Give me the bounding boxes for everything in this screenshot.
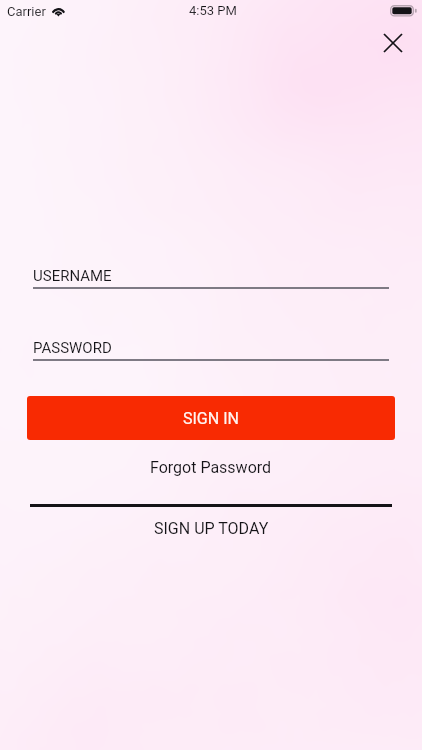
button[interactable]: Close bbox=[371, 21, 415, 65]
staticText: PASSWORD bbox=[33, 339, 112, 357]
staticText: Forgot Password bbox=[150, 458, 272, 477]
button[interactable]: SIGN UP TODAY bbox=[144, 516, 279, 541]
staticText: SIGN UP TODAY bbox=[154, 519, 269, 538]
staticText: Carrier bbox=[7, 4, 46, 19]
button[interactable]: SIGN IN bbox=[27, 396, 395, 440]
staticText: SIGN IN bbox=[183, 409, 239, 428]
button[interactable]: Forgot Password bbox=[140, 455, 282, 480]
staticText: USERNAME bbox=[33, 267, 112, 285]
staticText: 4:53 PM bbox=[189, 3, 237, 18]
